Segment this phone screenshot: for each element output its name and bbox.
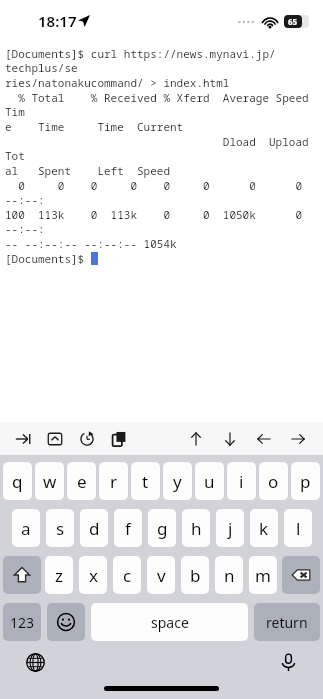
button[interactable]: return bbox=[254, 603, 320, 641]
button[interactable]: n bbox=[215, 556, 243, 594]
button[interactable]: f bbox=[114, 509, 142, 547]
button[interactable]: q bbox=[3, 462, 32, 500]
button[interactable]: b bbox=[181, 556, 209, 594]
staticText: 123 bbox=[10, 613, 35, 632]
staticText: ries/natonakucommand/ > index.html bbox=[5, 75, 230, 90]
button[interactable]: x bbox=[79, 556, 107, 594]
button[interactable]: o bbox=[259, 462, 288, 500]
button[interactable]: Control bbox=[44, 428, 66, 450]
staticText: u bbox=[204, 470, 215, 493]
staticText: al Spent Left Speed bbox=[5, 163, 170, 178]
staticText: q bbox=[12, 470, 23, 493]
button[interactable]: Shift bbox=[3, 556, 41, 594]
staticText: -- --:--:-- --:--:-- 1054k bbox=[5, 236, 177, 251]
staticText: s bbox=[56, 517, 65, 540]
button[interactable]: Change keyboard bbox=[22, 649, 48, 675]
staticText: f bbox=[125, 517, 131, 540]
staticText: e bbox=[77, 470, 87, 493]
staticText: % Total % Received % Xferd Average Speed… bbox=[5, 90, 323, 119]
button[interactable]: e bbox=[67, 462, 96, 500]
staticText: y bbox=[173, 470, 182, 493]
staticText: t bbox=[142, 470, 149, 493]
button[interactable]: Arrow down bbox=[219, 428, 241, 450]
staticText: return bbox=[266, 613, 308, 632]
button[interactable]: j bbox=[216, 509, 244, 547]
staticText: d bbox=[89, 517, 100, 540]
staticText: e Time Time Current bbox=[5, 119, 184, 134]
button[interactable]: m bbox=[249, 556, 277, 594]
staticText: h bbox=[191, 517, 202, 540]
button[interactable]: s bbox=[46, 509, 74, 547]
staticText: 100 113k 0 113k 0 0 1050k 0 --:--: bbox=[5, 207, 323, 236]
staticText: p bbox=[300, 470, 311, 493]
button[interactable]: c bbox=[113, 556, 141, 594]
staticText: j bbox=[228, 517, 233, 540]
staticText: w bbox=[43, 470, 57, 493]
button[interactable]: r bbox=[99, 462, 128, 500]
staticText: k bbox=[259, 517, 269, 540]
button[interactable]: Dictation bbox=[275, 649, 301, 675]
staticText: i bbox=[239, 470, 244, 493]
button[interactable]: Arrow right bbox=[287, 428, 309, 450]
button[interactable]: u bbox=[195, 462, 224, 500]
button[interactable]: Arrow left bbox=[253, 428, 275, 450]
staticText: c bbox=[123, 564, 132, 587]
staticText: n bbox=[224, 564, 235, 587]
button[interactable]: Emoji bbox=[47, 603, 85, 641]
staticText: b bbox=[190, 564, 201, 587]
staticText: m bbox=[255, 564, 271, 587]
button[interactable]: Arrow up bbox=[185, 428, 207, 450]
button[interactable]: z bbox=[45, 556, 73, 594]
staticText: 65 bbox=[288, 16, 298, 27]
button[interactable]: k bbox=[250, 509, 278, 547]
button[interactable]: Tab bbox=[12, 428, 34, 450]
button[interactable]: p bbox=[291, 462, 320, 500]
button[interactable]: i bbox=[227, 462, 256, 500]
button[interactable]: v bbox=[147, 556, 175, 594]
staticText: [Documents]$ curl https://news.mynavi.jp… bbox=[5, 46, 323, 75]
button[interactable]: t bbox=[131, 462, 160, 500]
staticText: o bbox=[268, 470, 279, 493]
button[interactable]: space bbox=[91, 603, 248, 641]
staticText: g bbox=[157, 517, 168, 540]
staticText: 18:17 bbox=[38, 11, 77, 31]
staticText: x bbox=[89, 564, 98, 587]
button[interactable]: y bbox=[163, 462, 192, 500]
button[interactable]: d bbox=[80, 509, 108, 547]
staticText: a bbox=[21, 517, 31, 540]
button[interactable]: h bbox=[182, 509, 210, 547]
staticText: l bbox=[296, 517, 301, 540]
button[interactable]: 123 bbox=[3, 603, 41, 641]
staticText: space bbox=[151, 613, 189, 632]
staticText: 0 0 0 0 0 0 0 0 --:--: bbox=[5, 178, 323, 207]
staticText: [Documents]$ bbox=[5, 251, 91, 266]
button[interactable]: w bbox=[35, 462, 64, 500]
button[interactable]: Backspace bbox=[282, 556, 320, 594]
staticText: r bbox=[110, 470, 118, 493]
staticText: z bbox=[55, 564, 63, 587]
button[interactable]: History bbox=[76, 428, 98, 450]
button[interactable]: a bbox=[12, 509, 40, 547]
button[interactable]: g bbox=[148, 509, 176, 547]
button[interactable]: Paste bbox=[108, 428, 130, 450]
staticText: Dload Upload Tot bbox=[5, 134, 323, 163]
staticText: v bbox=[157, 564, 166, 587]
button[interactable]: l bbox=[284, 509, 312, 547]
